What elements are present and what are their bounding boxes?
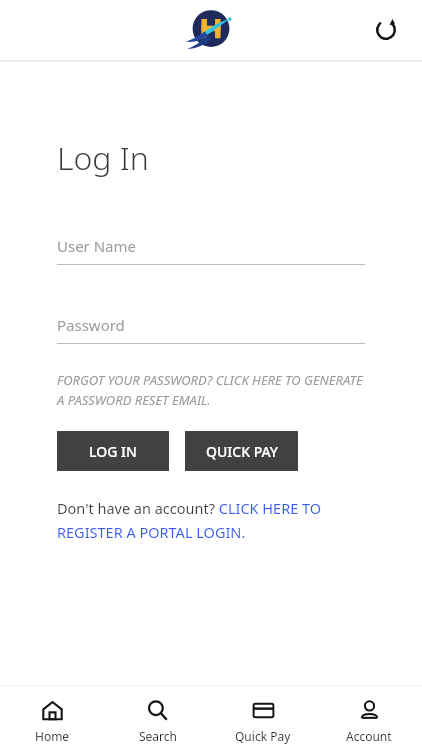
button[interactable]: Don't have an account? CLICK HERE TO REG…	[57, 498, 365, 542]
button[interactable]: Account	[316, 686, 422, 750]
staticText: Account	[346, 728, 392, 744]
staticText: Search	[139, 728, 177, 744]
staticText: Password	[57, 315, 125, 335]
button[interactable]: LOG IN	[57, 431, 169, 471]
staticText: Quick Pay	[235, 728, 291, 744]
staticText: LOG IN	[89, 442, 137, 461]
staticText: FORGOT YOUR PASSWORD? CLICK HERE TO GENE…	[57, 371, 365, 409]
staticText: Home	[35, 728, 70, 744]
button[interactable]: FORGOT YOUR PASSWORD? CLICK HERE TO GENE…	[57, 371, 365, 409]
button[interactable]: Refresh	[364, 8, 408, 52]
button[interactable]: QUICK PAY	[185, 431, 298, 471]
button[interactable]: Quick Pay	[210, 686, 316, 750]
staticText: QUICK PAY	[206, 442, 278, 461]
button[interactable]: Home	[0, 686, 105, 750]
staticText: Log In	[57, 136, 149, 180]
staticText: Don't have an account? CLICK HERE TO REG…	[57, 498, 365, 542]
button[interactable]: Password	[57, 315, 365, 344]
button[interactable]: Search	[105, 686, 210, 750]
button[interactable]: User Name	[57, 236, 365, 265]
staticText: User Name	[57, 236, 137, 256]
button[interactable]: Home logo	[188, 7, 234, 53]
